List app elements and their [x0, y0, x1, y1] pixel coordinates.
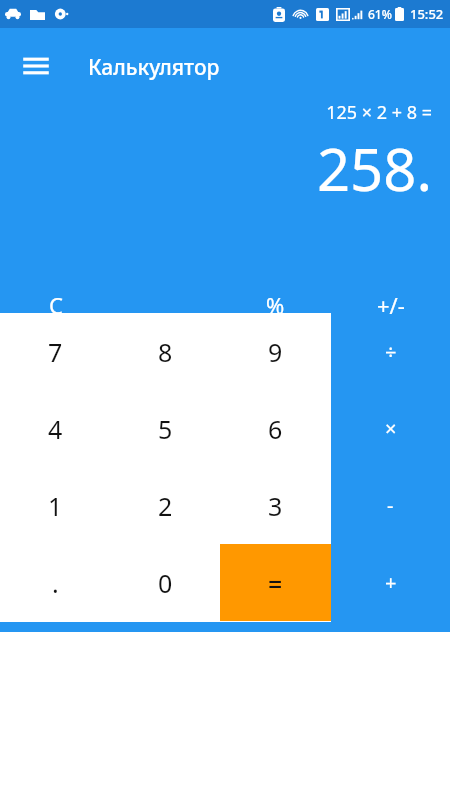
staticText: × [385, 415, 397, 442]
staticText: 9 [268, 335, 283, 369]
staticText: 15:52 [410, 5, 444, 23]
staticText: - [387, 492, 394, 519]
staticText: = [268, 566, 283, 600]
button[interactable]: 8 [110, 313, 220, 390]
staticText: 2 [158, 489, 173, 523]
staticText: +/- [377, 290, 405, 320]
button[interactable]: 6 [220, 390, 331, 467]
staticText: C [49, 290, 63, 320]
button[interactable]: Divide [331, 313, 450, 390]
button[interactable]: C [0, 276, 111, 334]
button[interactable]: Open navigation menu [16, 46, 56, 86]
button[interactable]: . [0, 544, 110, 621]
button[interactable]: 5 [110, 390, 220, 467]
button[interactable]: Add [331, 544, 450, 621]
staticText: ÷ [385, 338, 397, 365]
staticText: 125 × 2 + 8 = [0, 100, 432, 125]
staticText: 258. [0, 129, 432, 208]
staticText: % [266, 290, 285, 320]
staticText: 4 [48, 412, 63, 446]
staticText: 7 [48, 335, 63, 369]
button[interactable]: = [220, 544, 331, 621]
staticText: 0 [158, 566, 173, 600]
button[interactable]: % [220, 276, 331, 334]
button[interactable]: 4 [0, 390, 110, 467]
button[interactable]: 7 [0, 313, 110, 390]
button[interactable]: Subtract [331, 467, 450, 544]
button[interactable]: 2 [110, 467, 220, 544]
button[interactable]: 0 [110, 544, 220, 621]
button[interactable]: 1 [0, 467, 110, 544]
staticText: Калькулятор [88, 53, 220, 82]
staticText: . [52, 566, 59, 600]
staticText: 61% [368, 6, 392, 22]
staticText: 8 [158, 335, 173, 369]
button[interactable]: Multiply [331, 390, 450, 467]
staticText: 1 [48, 489, 63, 523]
staticText: 5 [158, 412, 173, 446]
button[interactable]: +/- [331, 276, 450, 334]
staticText: 6 [268, 412, 283, 446]
button[interactable]: 9 [220, 313, 331, 390]
button[interactable]: 3 [220, 467, 331, 544]
staticText: + [385, 569, 397, 596]
staticText: 3 [268, 489, 283, 523]
